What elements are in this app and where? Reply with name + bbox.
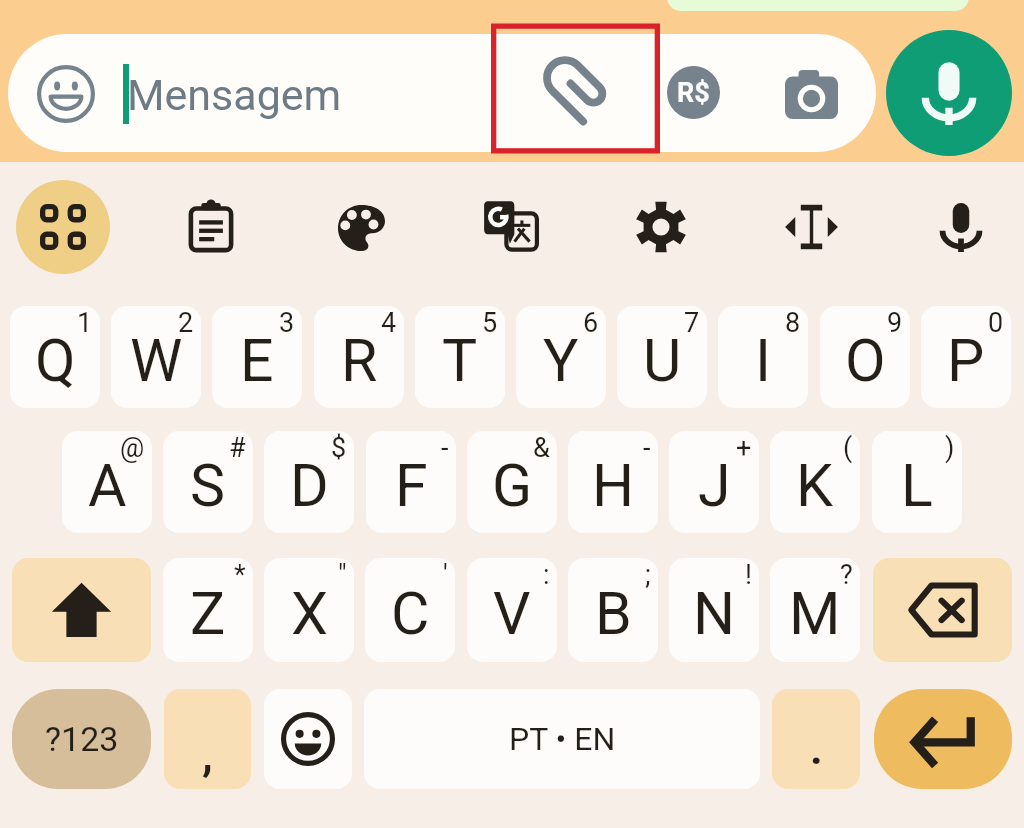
staticText: I: [755, 326, 772, 395]
button[interactable]: H: [568, 431, 658, 533]
button[interactable]: Translate: [464, 180, 558, 274]
staticText: 2: [178, 307, 194, 339]
button[interactable]: Q: [10, 306, 100, 408]
button[interactable]: X: [264, 558, 354, 662]
staticText: Z: [190, 579, 226, 648]
button[interactable]: D: [264, 431, 354, 533]
staticText: ;: [645, 559, 651, 591]
button[interactable]: A: [62, 431, 152, 533]
staticText: A: [88, 451, 127, 520]
button[interactable]: Emoji: [264, 689, 352, 789]
button[interactable]: L: [872, 431, 962, 533]
button[interactable]: Clipboard: [164, 180, 258, 274]
staticText: J: [698, 451, 731, 520]
button[interactable]: W: [111, 306, 201, 408]
staticText: Y: [543, 326, 579, 395]
staticText: 9: [887, 307, 903, 339]
button[interactable]: Space: [364, 689, 760, 789]
button[interactable]: M: [770, 558, 860, 662]
staticText: L: [901, 451, 933, 520]
button[interactable]: Symbols: [12, 689, 151, 789]
staticText: F: [395, 451, 428, 520]
staticText: Q: [35, 326, 76, 395]
staticText: K: [796, 451, 834, 520]
staticText: O: [845, 326, 886, 395]
button[interactable]: Attach: [491, 24, 660, 154]
button[interactable]: U: [617, 306, 707, 408]
button[interactable]: Period: [772, 689, 860, 789]
button[interactable]: Enter: [874, 689, 1012, 789]
staticText: N: [693, 579, 736, 648]
staticText: Mensagem: [127, 70, 342, 120]
button[interactable]: C: [365, 558, 455, 662]
staticText: #: [229, 432, 246, 464]
button[interactable]: J: [669, 431, 759, 533]
staticText: ": [338, 559, 347, 591]
staticText: @: [120, 432, 145, 464]
staticText: 8: [785, 307, 801, 339]
staticText: +: [736, 432, 752, 464]
staticText: *: [234, 559, 246, 591]
button[interactable]: Emoji: [37, 65, 95, 123]
staticText: 7: [684, 307, 700, 339]
staticText: ): [945, 432, 955, 464]
button[interactable]: S: [163, 431, 253, 533]
staticText: T: [442, 326, 478, 395]
button[interactable]: Text editing: [764, 180, 858, 274]
button[interactable]: T: [415, 306, 505, 408]
button[interactable]: P: [921, 306, 1011, 408]
staticText: X: [291, 579, 328, 648]
staticText: H: [592, 451, 635, 520]
button[interactable]: Record voice message: [886, 30, 1012, 156]
button[interactable]: G: [467, 431, 557, 533]
staticText: R: [341, 326, 378, 395]
staticText: U: [643, 326, 682, 395]
staticText: 4: [381, 307, 397, 339]
staticText: &: [533, 432, 550, 464]
button[interactable]: Settings: [614, 180, 708, 274]
staticText: $: [331, 432, 347, 464]
button[interactable]: Shift: [12, 558, 151, 662]
staticText: M: [789, 579, 841, 648]
button[interactable]: B: [568, 558, 658, 662]
staticText: .: [810, 723, 823, 775]
button[interactable]: N: [669, 558, 759, 662]
button[interactable]: Send money: [667, 66, 720, 119]
staticText: 6: [583, 307, 599, 339]
button[interactable]: O: [820, 306, 910, 408]
button[interactable]: I: [718, 306, 808, 408]
button[interactable]: V: [467, 558, 557, 662]
staticText: B: [595, 579, 632, 648]
button[interactable]: K: [770, 431, 860, 533]
staticText: !: [745, 559, 752, 591]
staticText: -: [643, 432, 651, 464]
button[interactable]: F: [366, 431, 456, 533]
button[interactable]: Z: [163, 558, 253, 662]
button[interactable]: Themes: [314, 180, 408, 274]
staticText: P: [947, 326, 985, 395]
button[interactable]: Switch input method: [16, 180, 110, 274]
staticText: ?: [840, 559, 853, 591]
staticText: D: [290, 451, 329, 520]
staticText: W: [130, 326, 183, 395]
staticText: ': [443, 559, 448, 591]
staticText: G: [492, 451, 533, 520]
staticText: 0: [988, 307, 1004, 339]
staticText: ?123: [45, 719, 119, 759]
staticText: 1: [77, 307, 93, 339]
staticText: C: [391, 579, 430, 648]
button[interactable]: Voice input: [914, 180, 1008, 274]
staticText: :: [543, 559, 550, 591]
button[interactable]: R: [314, 306, 404, 408]
staticText: PT • EN: [509, 720, 616, 758]
staticText: 3: [279, 307, 295, 339]
button[interactable]: E: [212, 306, 302, 408]
staticText: (: [843, 432, 853, 464]
staticText: S: [190, 451, 226, 520]
staticText: -: [441, 432, 449, 464]
button[interactable]: Y: [516, 306, 606, 408]
button[interactable]: Comma: [164, 689, 251, 789]
staticText: E: [240, 326, 274, 395]
button[interactable]: Backspace: [873, 558, 1012, 662]
button[interactable]: Camera: [776, 60, 846, 128]
